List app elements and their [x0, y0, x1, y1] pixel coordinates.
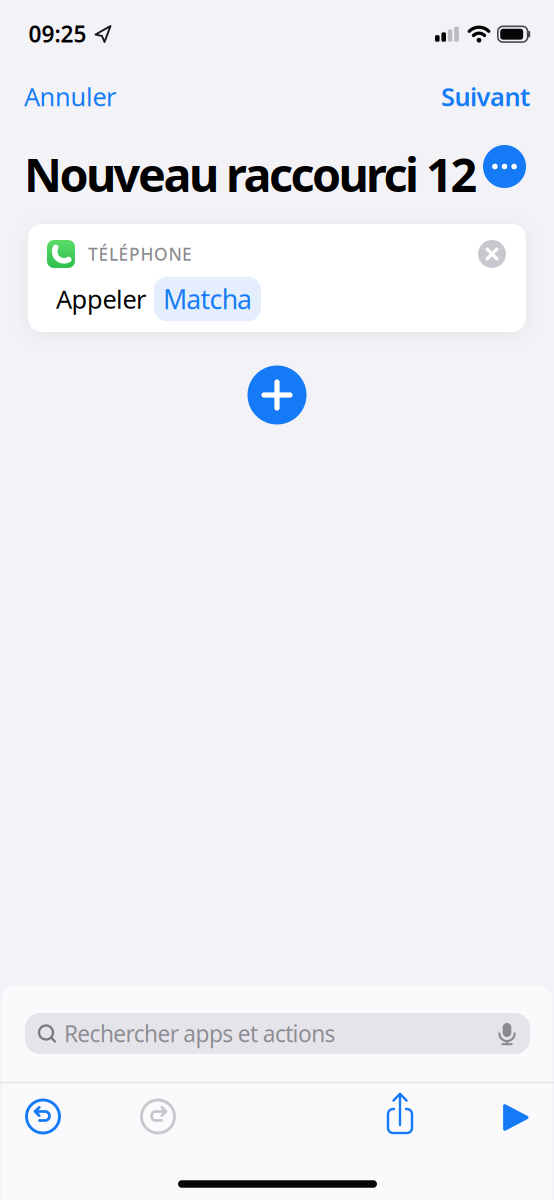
button[interactable]: Annuler la modification — [25, 1098, 61, 1134]
staticText: Matcha — [163, 281, 252, 317]
button[interactable]: Matcha — [154, 277, 261, 321]
staticText: Appeler — [56, 282, 146, 316]
staticText: Suivant — [441, 80, 530, 113]
button[interactable]: Annuler — [24, 80, 116, 113]
button[interactable]: Rétablir — [140, 1098, 176, 1134]
button[interactable]: Supprimer l'action — [478, 240, 506, 268]
staticText: Annuler — [24, 80, 116, 113]
staticText: Nouveau raccourci 12 — [24, 143, 477, 205]
button[interactable]: Partager — [380, 1090, 420, 1138]
button[interactable]: Ajouter une action — [247, 365, 306, 424]
staticText: Rechercher apps et actions — [64, 1018, 335, 1048]
button[interactable]: Plus d'options — [483, 145, 526, 188]
button[interactable]: Exécuter — [502, 1102, 530, 1132]
button[interactable]: Suivant — [441, 80, 530, 113]
button[interactable]: Dictée — [496, 1020, 518, 1046]
staticText: 09:25 — [28, 19, 86, 49]
staticText: TÉLÉPHONE — [88, 242, 192, 265]
button[interactable]: Rechercher apps et actions — [25, 1013, 530, 1054]
